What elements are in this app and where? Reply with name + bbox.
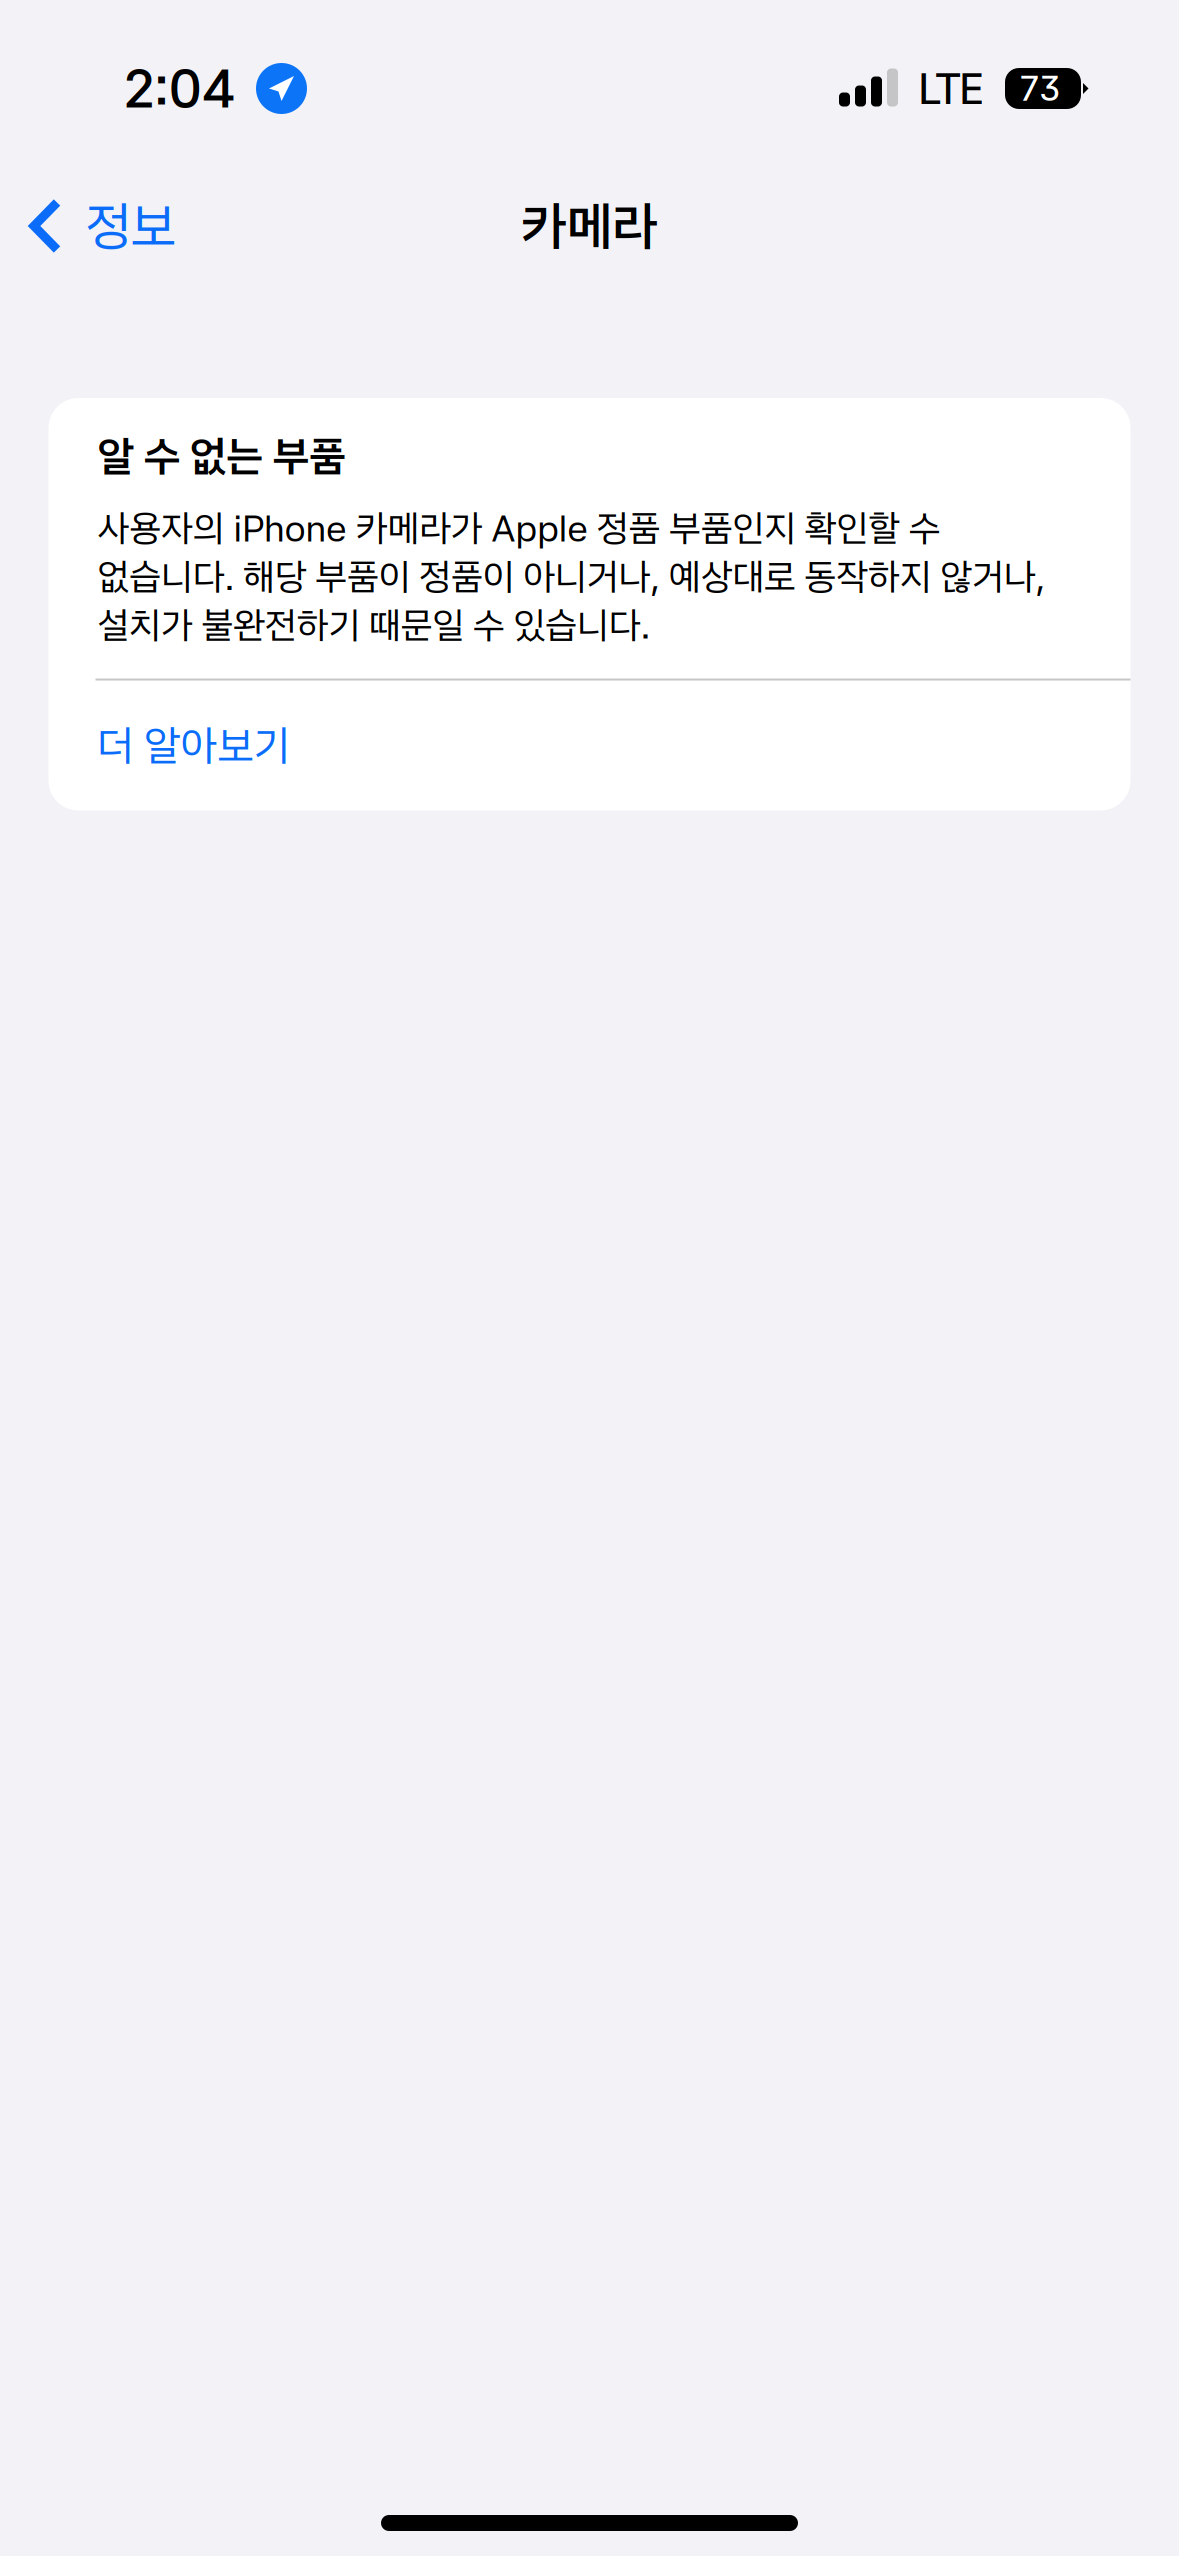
- staticText: 73: [1020, 68, 1060, 109]
- staticText: 2:04: [124, 57, 235, 120]
- staticText: 알 수 없는 부품: [97, 431, 346, 482]
- staticText: 사용자의 iPhone 카메라가 Apple 정품 부품인지 확인할 수: [97, 506, 941, 550]
- button[interactable]: 정보로 돌아가기: [0, 171, 201, 281]
- staticText: LTE: [918, 62, 984, 115]
- staticText: 정보: [86, 194, 177, 258]
- staticText: 카메라: [521, 194, 658, 258]
- staticText: 설치가 불완전하기 때문일 수 있습니다.: [97, 603, 650, 647]
- staticText: 더 알아보기: [97, 720, 291, 771]
- button[interactable]: 더 알아보기: [48, 680, 1130, 810]
- staticText: 없습니다. 해당 부품이 정품이 아니거나, 예상대로 동작하지 않거나,: [97, 554, 1045, 599]
